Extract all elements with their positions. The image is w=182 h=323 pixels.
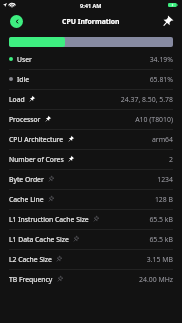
button[interactable]: Idle [0, 69, 182, 89]
button[interactable]: Processor [0, 109, 182, 129]
button[interactable]: Number of Cores [0, 149, 182, 169]
button[interactable]: User [0, 49, 182, 69]
staticText: CPU Architecture [9, 135, 64, 144]
button[interactable]: Pin [160, 14, 174, 28]
staticText: Processor [9, 115, 41, 124]
staticText: User [17, 55, 32, 64]
button[interactable]: Byte Order [0, 169, 182, 189]
staticText: 65.5 kB [103, 215, 173, 224]
staticText: 3.15 MB [66, 255, 173, 264]
staticText: 9:41 AM [80, 2, 102, 10]
staticText: 34.19% [36, 55, 173, 64]
button[interactable]: Back [10, 15, 23, 28]
staticText: 2 [78, 155, 173, 164]
staticText: Idle [17, 75, 30, 84]
button[interactable]: Load [0, 89, 182, 109]
staticText: Load [9, 95, 25, 104]
staticText: 24.37, 8.50, 5.78 [39, 95, 173, 104]
staticText: 128 B [58, 195, 173, 204]
button[interactable]: TB Frequency [0, 269, 182, 289]
staticText: L1 Instruction Cache Size [9, 215, 89, 224]
staticText: Cache Line [9, 195, 44, 204]
button[interactable]: CPU Architecture [0, 129, 182, 149]
staticText: 65.81% [34, 75, 173, 84]
staticText: TB Frequency [9, 275, 53, 284]
staticText: Number of Cores [9, 155, 64, 164]
button[interactable]: L1 Instruction Cache Size [0, 209, 182, 229]
button[interactable]: Cache Line [0, 189, 182, 209]
staticText: 65.5 kB [83, 235, 173, 244]
staticText: 24.00 MHz [67, 275, 173, 284]
staticText: L1 Data Cache Size [9, 235, 69, 244]
staticText: arm64 [78, 135, 173, 144]
staticText: 1234 [58, 175, 173, 184]
button[interactable]: L2 Cache Size [0, 249, 182, 269]
button[interactable]: L1 Data Cache Size [0, 229, 182, 249]
staticText: A10 (T8010) [55, 115, 173, 124]
staticText: CPU Information [62, 17, 120, 26]
staticText: L2 Cache Size [9, 255, 52, 264]
staticText: Byte Order [9, 175, 44, 184]
